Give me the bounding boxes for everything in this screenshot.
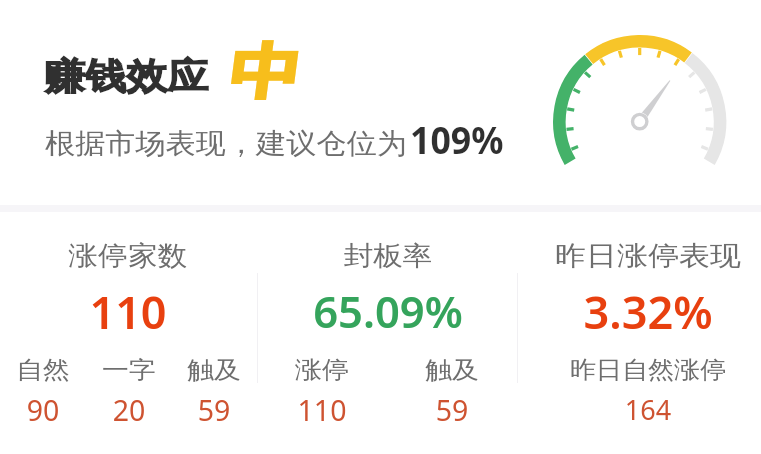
staticText: 20 bbox=[9, 391, 249, 430]
staticText: 90 bbox=[0, 391, 163, 430]
staticText: 109% bbox=[410, 113, 504, 165]
staticText: 110 bbox=[0, 281, 288, 342]
button[interactable]: 封板率 65.09% bbox=[258, 214, 517, 454]
staticText: 昨日自然涨停 bbox=[517, 355, 761, 385]
staticText: 封板率 bbox=[212, 239, 564, 273]
staticText: 59 bbox=[94, 391, 334, 430]
staticText: 涨停 bbox=[188, 355, 456, 385]
staticText: 3.32% bbox=[488, 281, 761, 342]
button[interactable]: 赚钱效应 bbox=[0, 0, 761, 205]
staticText: 110 bbox=[202, 391, 442, 430]
other: Suggested position gauge 109% bbox=[540, 22, 740, 182]
button[interactable]: 涨停家数 110 bbox=[0, 214, 257, 454]
staticText: 昨日涨停表现 bbox=[464, 239, 761, 273]
staticText: 自然 bbox=[0, 355, 177, 385]
staticText: 触及 bbox=[318, 355, 586, 385]
button[interactable]: 昨日涨停表现 3.32% bbox=[518, 214, 761, 454]
staticText: 一字 bbox=[0, 355, 263, 385]
staticText: 164 bbox=[528, 391, 761, 428]
staticText: 赚钱效应 bbox=[44, 54, 208, 100]
staticText: 根据市场表现，建议仓位为 bbox=[45, 126, 407, 161]
staticText: 触及 bbox=[80, 355, 348, 385]
staticText: 65.09% bbox=[228, 281, 548, 340]
staticText: 59 bbox=[332, 391, 572, 430]
staticText: 涨停家数 bbox=[0, 239, 304, 273]
